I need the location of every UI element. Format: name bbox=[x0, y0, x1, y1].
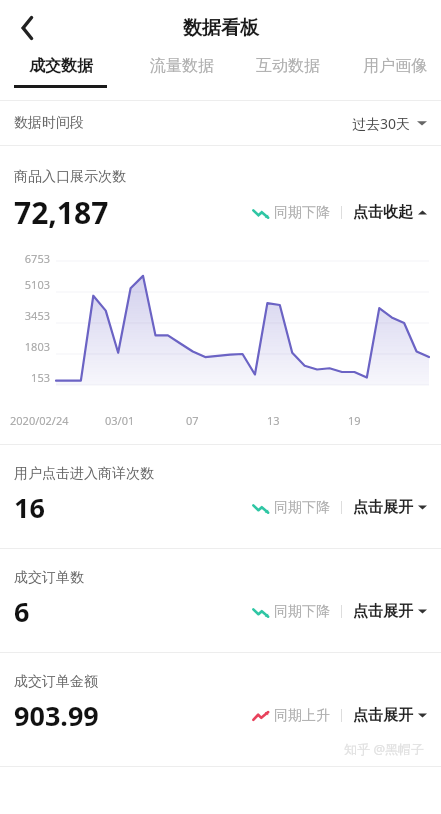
staticText: 6753 bbox=[24, 251, 50, 266]
staticText: 同期上升 bbox=[274, 707, 330, 725]
staticText: 点击展开 bbox=[353, 706, 413, 725]
button[interactable]: 用户画像 bbox=[363, 56, 427, 85]
staticText: 3453 bbox=[24, 308, 50, 323]
staticText: 13 bbox=[267, 413, 280, 428]
staticText: 153 bbox=[31, 370, 50, 385]
staticText: 过去30天 bbox=[352, 114, 411, 133]
staticText: 5103 bbox=[24, 277, 50, 292]
button[interactable]: 点击收起 bbox=[353, 203, 427, 222]
staticText: 点击展开 bbox=[353, 498, 413, 517]
staticText: 数据时间段 bbox=[14, 114, 84, 132]
staticText: 72,187 bbox=[14, 192, 109, 233]
staticText: 2020/02/24 bbox=[10, 413, 69, 428]
button[interactable]: 成交数据 bbox=[14, 56, 107, 88]
staticText: 用户画像 bbox=[363, 56, 427, 76]
staticText: 同期下降 bbox=[274, 603, 330, 621]
button[interactable]: Back bbox=[6, 6, 50, 50]
button[interactable]: 流量数据 bbox=[150, 56, 214, 85]
staticText: 数据看板 bbox=[183, 16, 259, 40]
staticText: 互动数据 bbox=[256, 56, 320, 76]
staticText: 07 bbox=[186, 413, 199, 428]
staticText: 商品入口展示次数 bbox=[14, 168, 126, 186]
staticText: 流量数据 bbox=[150, 56, 214, 76]
staticText: 成交订单金额 bbox=[14, 673, 98, 691]
staticText: 903.99 bbox=[14, 697, 99, 734]
staticText: 6 bbox=[14, 593, 30, 630]
staticText: 知乎 @黑帽子 bbox=[344, 740, 425, 758]
staticText: 03/01 bbox=[105, 413, 135, 428]
staticText: 用户点击进入商详次数 bbox=[14, 465, 154, 483]
staticText: 16 bbox=[14, 489, 45, 526]
staticText: 成交数据 bbox=[29, 56, 93, 76]
button[interactable]: 数据时间段 bbox=[0, 101, 441, 145]
button[interactable]: 互动数据 bbox=[256, 56, 320, 85]
staticText: 19 bbox=[348, 413, 361, 428]
button[interactable]: 点击展开 bbox=[353, 706, 427, 725]
staticText: 1803 bbox=[24, 339, 50, 354]
staticText: 点击收起 bbox=[353, 203, 413, 222]
button[interactable]: 点击展开 bbox=[353, 498, 427, 517]
staticText: 点击展开 bbox=[353, 602, 413, 621]
button[interactable]: 点击展开 bbox=[353, 602, 427, 621]
staticText: 同期下降 bbox=[274, 204, 330, 222]
staticText: 同期下降 bbox=[274, 499, 330, 517]
staticText: 成交订单数 bbox=[14, 569, 84, 587]
